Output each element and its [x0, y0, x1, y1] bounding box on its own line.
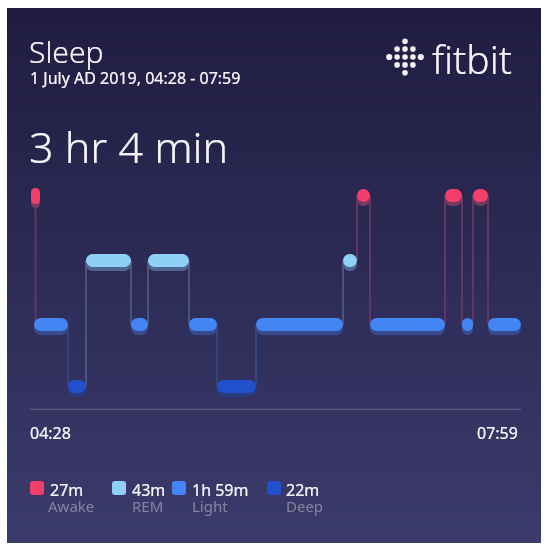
staticText: 27m [50, 479, 84, 501]
staticText: 3 hr 4 min [29, 117, 229, 176]
staticText: Deep [286, 496, 324, 516]
staticText: 22m [286, 479, 320, 501]
staticText: Sleep [29, 31, 104, 72]
staticText: REM [132, 496, 164, 516]
staticText: 1 July AD 2019, 04:28 - 07:59 [30, 67, 241, 89]
staticText: 04:28 [30, 422, 71, 444]
staticText: Light [192, 496, 228, 516]
staticText: 07:59 [477, 422, 518, 444]
staticText: 43m [132, 479, 166, 501]
staticText: Awake [48, 496, 95, 516]
staticText: 1h 59m [192, 479, 249, 501]
staticText: fitbit [432, 32, 513, 85]
